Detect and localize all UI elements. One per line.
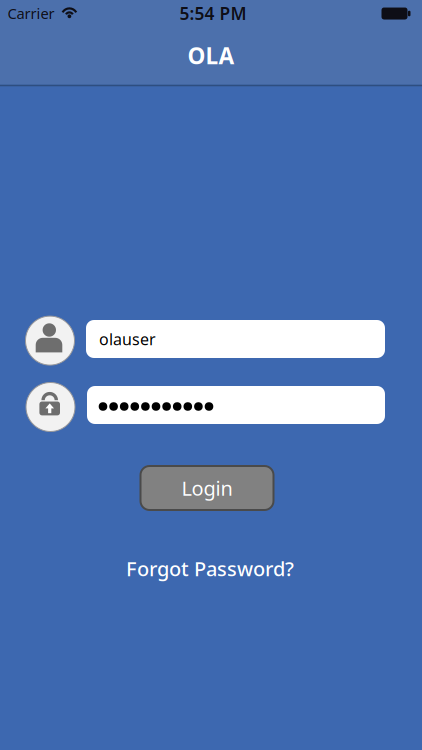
staticText: Carrier: [7, 3, 54, 23]
staticText: OLA: [187, 40, 234, 70]
staticText: 5:54 PM: [179, 2, 246, 25]
staticText: olauser: [99, 328, 156, 350]
button[interactable]: Forgot Password?: [126, 555, 294, 582]
button[interactable]: Login: [140, 466, 273, 510]
staticText: Forgot Password?: [126, 555, 294, 582]
button[interactable]: Password: [87, 386, 385, 424]
button[interactable]: olauser: [86, 320, 385, 358]
staticText: Login: [181, 475, 232, 501]
